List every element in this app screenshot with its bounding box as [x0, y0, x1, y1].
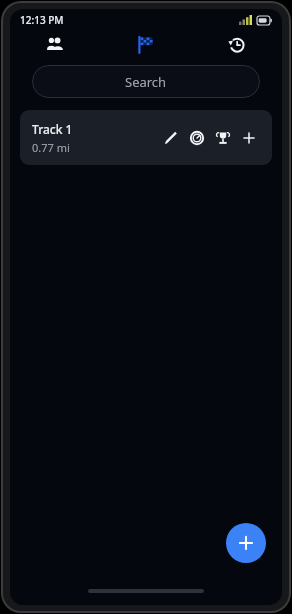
staticText: 12:13 PM — [20, 13, 64, 27]
button[interactable]: Search — [32, 65, 260, 98]
button[interactable]: Edit — [160, 127, 182, 149]
button[interactable]: Track 1 — [20, 110, 272, 165]
staticText: Track 1 — [32, 121, 73, 137]
button[interactable]: Add — [238, 127, 260, 149]
button[interactable]: Add track — [226, 523, 266, 563]
button[interactable]: View — [186, 127, 208, 149]
button[interactable]: Leaderboard — [212, 127, 234, 149]
staticText: 0.77 mi — [32, 140, 70, 155]
staticText: Search — [125, 73, 167, 91]
button[interactable]: Tracks — [100, 31, 191, 57]
button[interactable]: Friends — [10, 31, 100, 57]
button[interactable]: History — [191, 31, 282, 57]
